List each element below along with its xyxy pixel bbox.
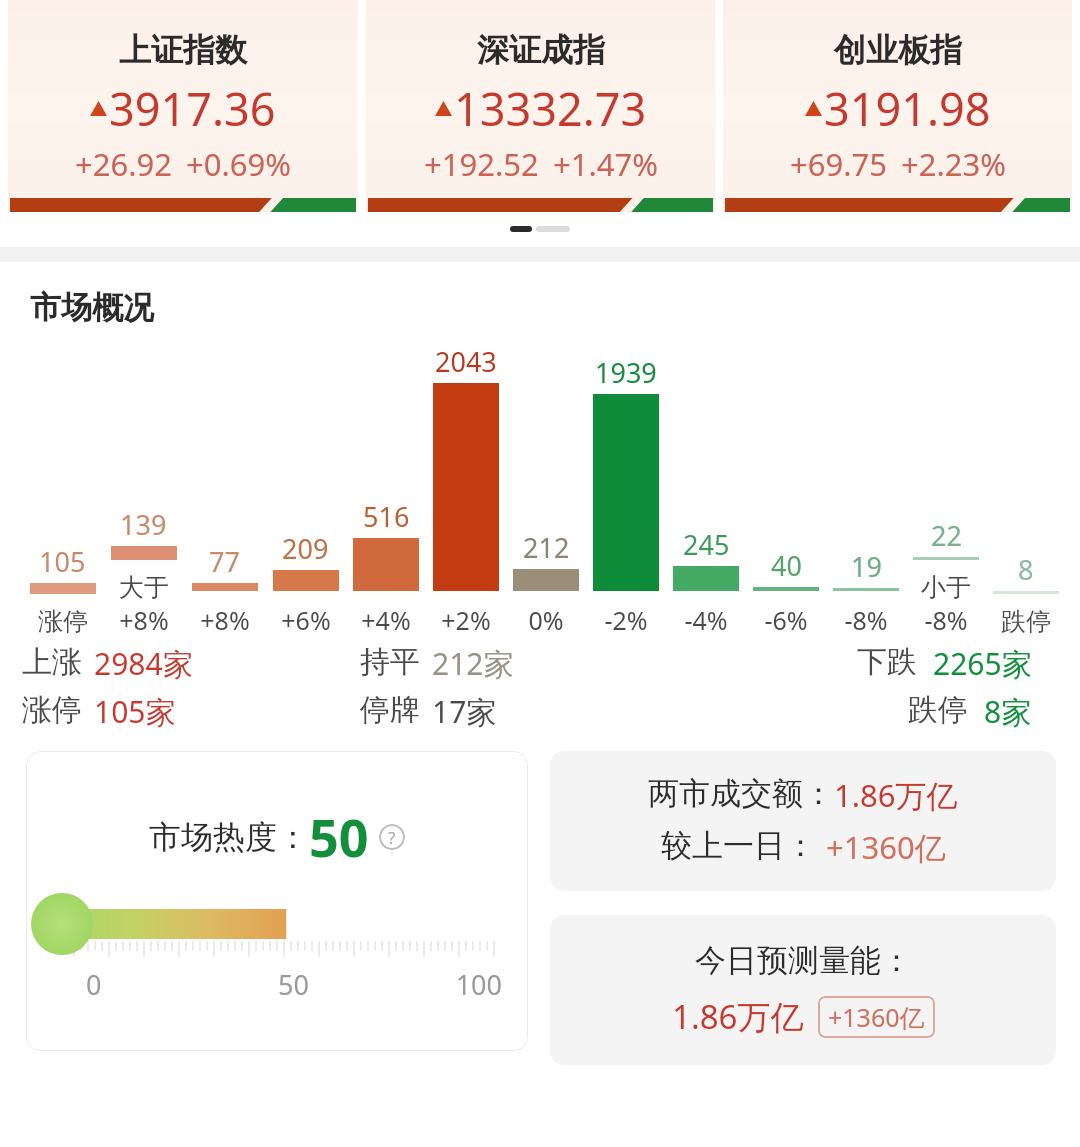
staticText: +2% (441, 603, 491, 637)
staticText: 17家 (432, 691, 497, 729)
button[interactable]: 深证成指 (366, 0, 715, 212)
staticText: 停牌 (360, 691, 420, 729)
staticText: 2043 (435, 343, 497, 380)
staticText: -6% (764, 603, 808, 637)
staticText: 8 (1018, 551, 1034, 588)
staticText: 跌停 (1001, 606, 1051, 637)
staticText: +4% (361, 603, 411, 637)
staticText: -2% (604, 603, 648, 637)
staticText: +1.47% (553, 143, 658, 185)
staticText: 1.86万亿 (834, 774, 958, 816)
staticText: 上证指数 (119, 30, 247, 70)
staticText: 13332.73 (454, 78, 647, 139)
staticText: 40 (771, 547, 802, 584)
staticText: 较上一日： (661, 826, 816, 865)
staticText: -4% (684, 603, 728, 637)
staticText: 0 (86, 966, 224, 1003)
button[interactable]: 两市成交额： (550, 751, 1056, 891)
staticText: 两市成交额： (648, 774, 834, 813)
staticText: 涨停 (38, 606, 88, 637)
staticText: 3917.36 (109, 78, 276, 139)
staticText: 市场热度： (149, 817, 309, 857)
staticText: 245 (683, 526, 730, 563)
staticText: 209 (282, 530, 329, 567)
staticText: 0% (528, 603, 564, 637)
staticText: +69.75 (790, 143, 887, 185)
staticText: +1360亿 (826, 826, 946, 868)
staticText: 今日预测量能： (695, 941, 912, 980)
staticText: -8% (844, 603, 888, 637)
staticText: 212家 (432, 643, 514, 681)
staticText: 100 (363, 966, 502, 1003)
button[interactable]: 今日预测量能： (550, 915, 1056, 1065)
staticText: 持平 (360, 643, 420, 681)
staticText: 2265家 (933, 643, 1032, 681)
staticText: 212 (523, 529, 570, 566)
staticText: 22 (931, 517, 962, 554)
staticText: 创业板指 (834, 30, 962, 70)
staticText: 50 (309, 801, 369, 872)
staticText: +2.23% (901, 143, 1006, 185)
staticText: 50 (224, 966, 363, 1003)
staticText: 涨停 (22, 691, 82, 729)
staticText: +0.69% (186, 143, 291, 185)
staticText: 跌停 (908, 691, 968, 729)
button[interactable]: 市场热度： (26, 751, 528, 1051)
staticText: +6% (281, 603, 331, 637)
staticText: 2984家 (94, 643, 193, 681)
staticText: +26.92 (75, 143, 172, 185)
button[interactable]: 说明 (379, 824, 405, 850)
staticText: 下跌 (857, 643, 917, 681)
staticText: 深证成指 (477, 30, 605, 70)
staticText: 大于 (119, 572, 169, 603)
button[interactable]: 上证指数 (8, 0, 358, 212)
staticText: -8% (924, 603, 968, 637)
staticText: 1.86万亿 (672, 994, 804, 1039)
button[interactable]: 创业板指 (723, 0, 1072, 212)
staticText: +192.52 (424, 143, 539, 185)
staticText: 77 (209, 543, 240, 580)
staticText: 139 (120, 506, 167, 543)
staticText: 3191.98 (824, 78, 991, 139)
staticText: 上涨 (22, 643, 82, 681)
staticText: 8家 (984, 691, 1032, 729)
staticText: 516 (363, 498, 410, 535)
staticText: 105 (39, 543, 86, 580)
staticText: 小于 (921, 572, 971, 603)
staticText: +1360亿 (828, 1000, 925, 1034)
staticText: 19 (851, 548, 882, 585)
staticText: +8% (200, 603, 250, 637)
staticText: 105家 (94, 691, 176, 729)
staticText: 市场概况 (30, 288, 154, 327)
staticText: +8% (119, 603, 169, 637)
staticText: ? (388, 826, 396, 849)
staticText: 1939 (595, 354, 657, 391)
